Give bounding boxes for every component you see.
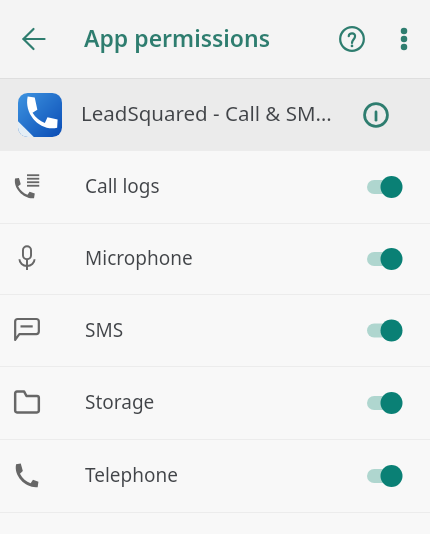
button[interactable]: Toggle permission [367,367,403,439]
button[interactable]: SMS [0,295,430,366]
button[interactable]: Microphone [0,224,430,294]
staticText: Storage [85,389,155,415]
staticText: Microphone [85,245,193,271]
button[interactable]: LeadSquared - Call & SM… [0,79,430,150]
button[interactable]: Telephone [0,440,430,512]
staticText: App permissions [84,22,271,53]
button[interactable]: Toggle permission [367,224,403,294]
button[interactable]: More options [378,0,430,78]
button[interactable]: App info [350,79,401,150]
staticText: SMS [85,317,124,343]
staticText: Telephone [85,462,178,488]
button[interactable]: Back [0,0,65,78]
button[interactable]: Call logs [0,151,430,223]
button[interactable]: Toggle permission [367,440,403,512]
staticText: LeadSquared - Call & SM… [81,99,350,127]
button[interactable]: Toggle permission [367,295,403,366]
button[interactable]: Toggle permission [367,151,403,223]
staticText: Call logs [85,173,160,199]
button[interactable]: Help [326,0,378,78]
button[interactable]: Storage [0,367,430,439]
